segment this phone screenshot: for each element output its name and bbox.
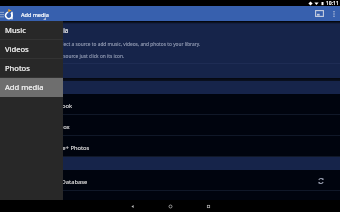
button[interactable]: Google+ Photos (0, 136, 340, 157)
staticText: Local Database (46, 178, 88, 186)
staticText: Add media (37, 26, 69, 34)
button[interactable]: Add media (19, 6, 49, 21)
button[interactable]: Navigation menu (0, 6, 4, 21)
button[interactable]: Videos (0, 40, 63, 59)
staticText: Videos (5, 44, 29, 54)
button[interactable]: Cast (311, 6, 328, 21)
button[interactable]: Facebook (0, 94, 340, 115)
staticText: 10:11 (326, 0, 339, 6)
button[interactable]: Add media (0, 78, 63, 97)
button[interactable]: Home (158, 200, 182, 212)
staticText: Music (5, 25, 26, 35)
staticText: Add media (21, 11, 49, 18)
staticText: Select a source to add music, videos, an… (57, 41, 201, 48)
staticText: To configure a source just click on its … (30, 53, 125, 60)
button[interactable]: Photos (0, 59, 63, 78)
staticText: Photos (5, 63, 30, 73)
staticText: Dropbox (46, 123, 70, 131)
button[interactable]: Local Database (0, 170, 340, 191)
button[interactable]: Back (120, 200, 144, 212)
staticText: Add media (5, 82, 44, 92)
button[interactable]: Music (0, 21, 63, 40)
button[interactable]: Recent apps (196, 200, 220, 212)
staticText: Google+ Photos (46, 144, 90, 152)
button[interactable]: More options (328, 6, 340, 21)
staticText: Facebook (46, 102, 72, 110)
button[interactable]: Dropbox (0, 115, 340, 136)
